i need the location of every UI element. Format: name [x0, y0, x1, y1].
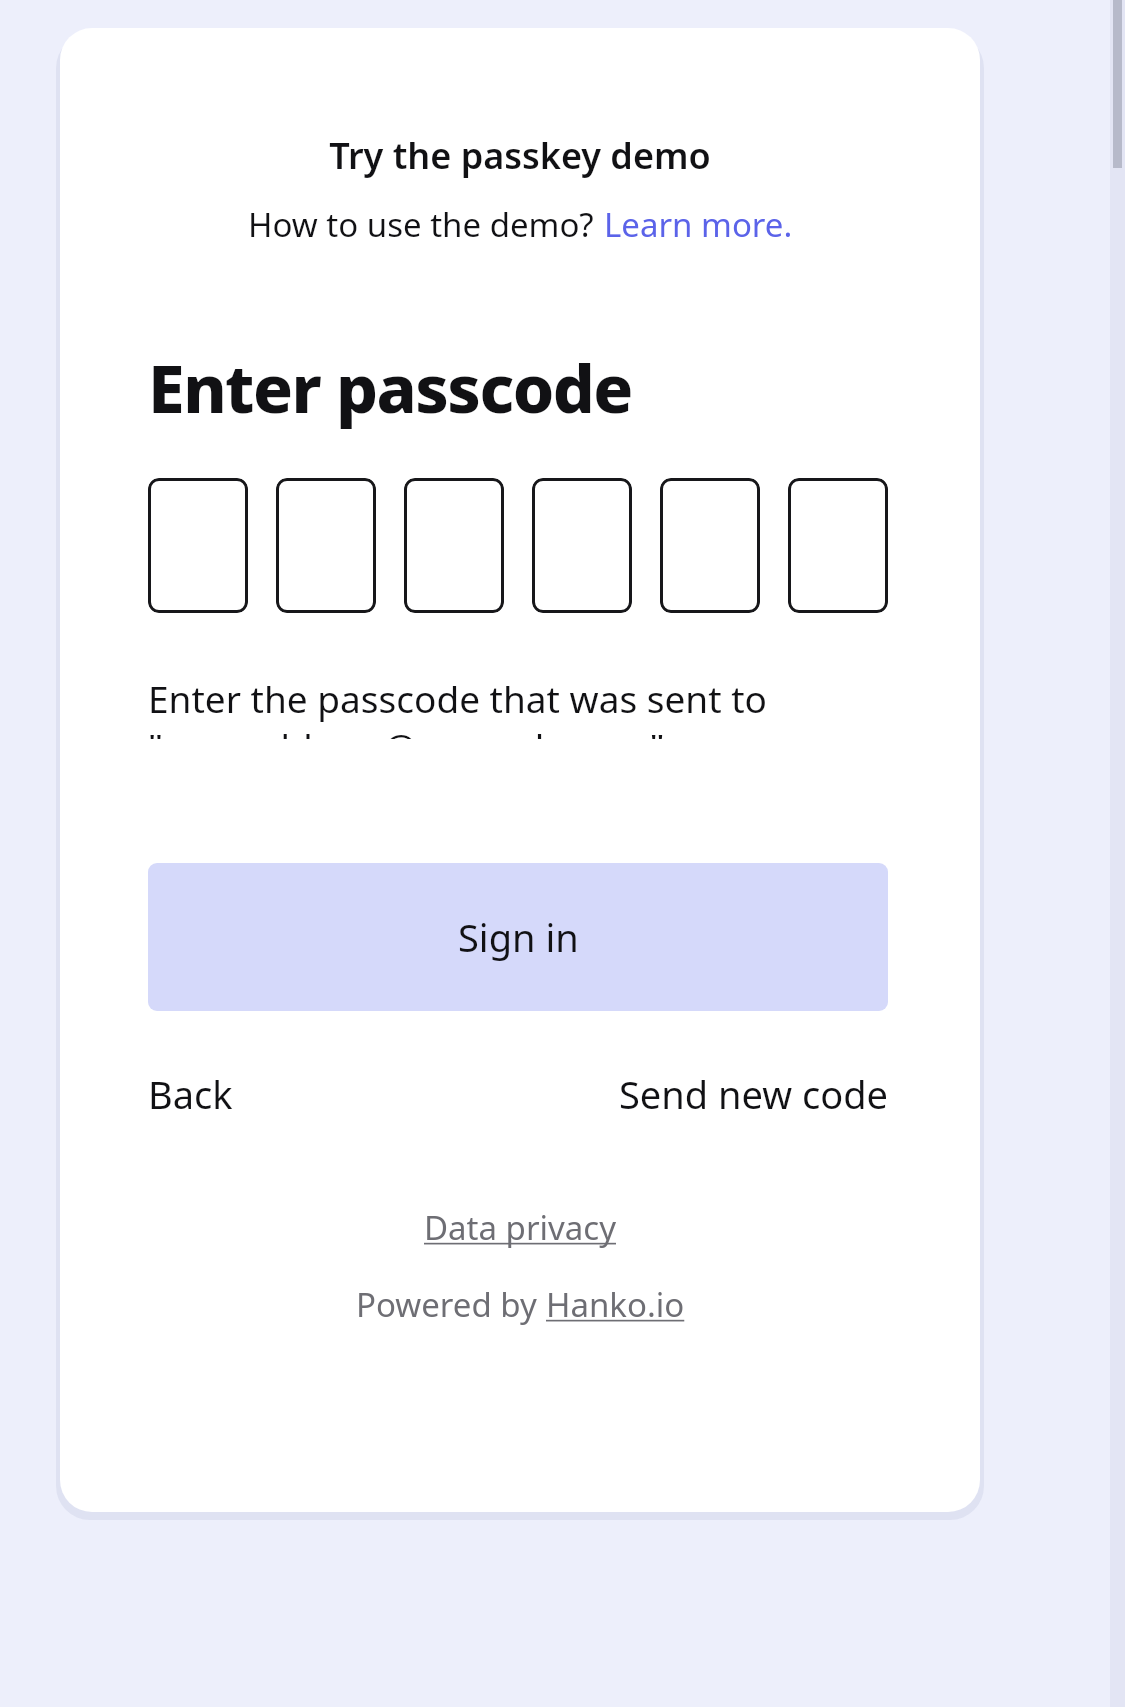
staticText: Send new code — [619, 1068, 888, 1120]
staticText: Hanko.io — [546, 1282, 685, 1327]
staticText: "your.address@example.com" — [148, 723, 665, 739]
staticText: Data privacy — [424, 1205, 616, 1250]
staticText: Sign in — [458, 911, 579, 963]
staticText: Powered by — [356, 1282, 546, 1327]
button[interactable]: Hanko.io — [546, 1282, 685, 1327]
staticText: How to use the demo? — [248, 202, 594, 247]
staticText: Enter passcode — [148, 342, 632, 432]
button[interactable]: Passcode digit 5 — [660, 478, 760, 613]
button[interactable]: Send new code — [619, 1058, 888, 1130]
staticText: Learn more. — [604, 202, 793, 247]
button[interactable]: Learn more. — [604, 202, 793, 247]
button[interactable]: Passcode digit 2 — [276, 478, 376, 613]
button[interactable]: Passcode digit 6 — [788, 478, 888, 613]
button[interactable]: Sign in — [148, 863, 888, 1011]
button[interactable]: Back — [148, 1058, 233, 1130]
button[interactable]: Passcode digit 1 — [148, 478, 248, 613]
staticText: Enter the passcode that was sent to — [148, 673, 767, 723]
button[interactable]: Data privacy — [418, 1201, 622, 1254]
button[interactable]: Passcode digit 4 — [532, 478, 632, 613]
staticText: Try the passkey demo — [60, 131, 980, 180]
button[interactable]: Passcode digit 3 — [404, 478, 504, 613]
staticText: Back — [148, 1068, 233, 1120]
